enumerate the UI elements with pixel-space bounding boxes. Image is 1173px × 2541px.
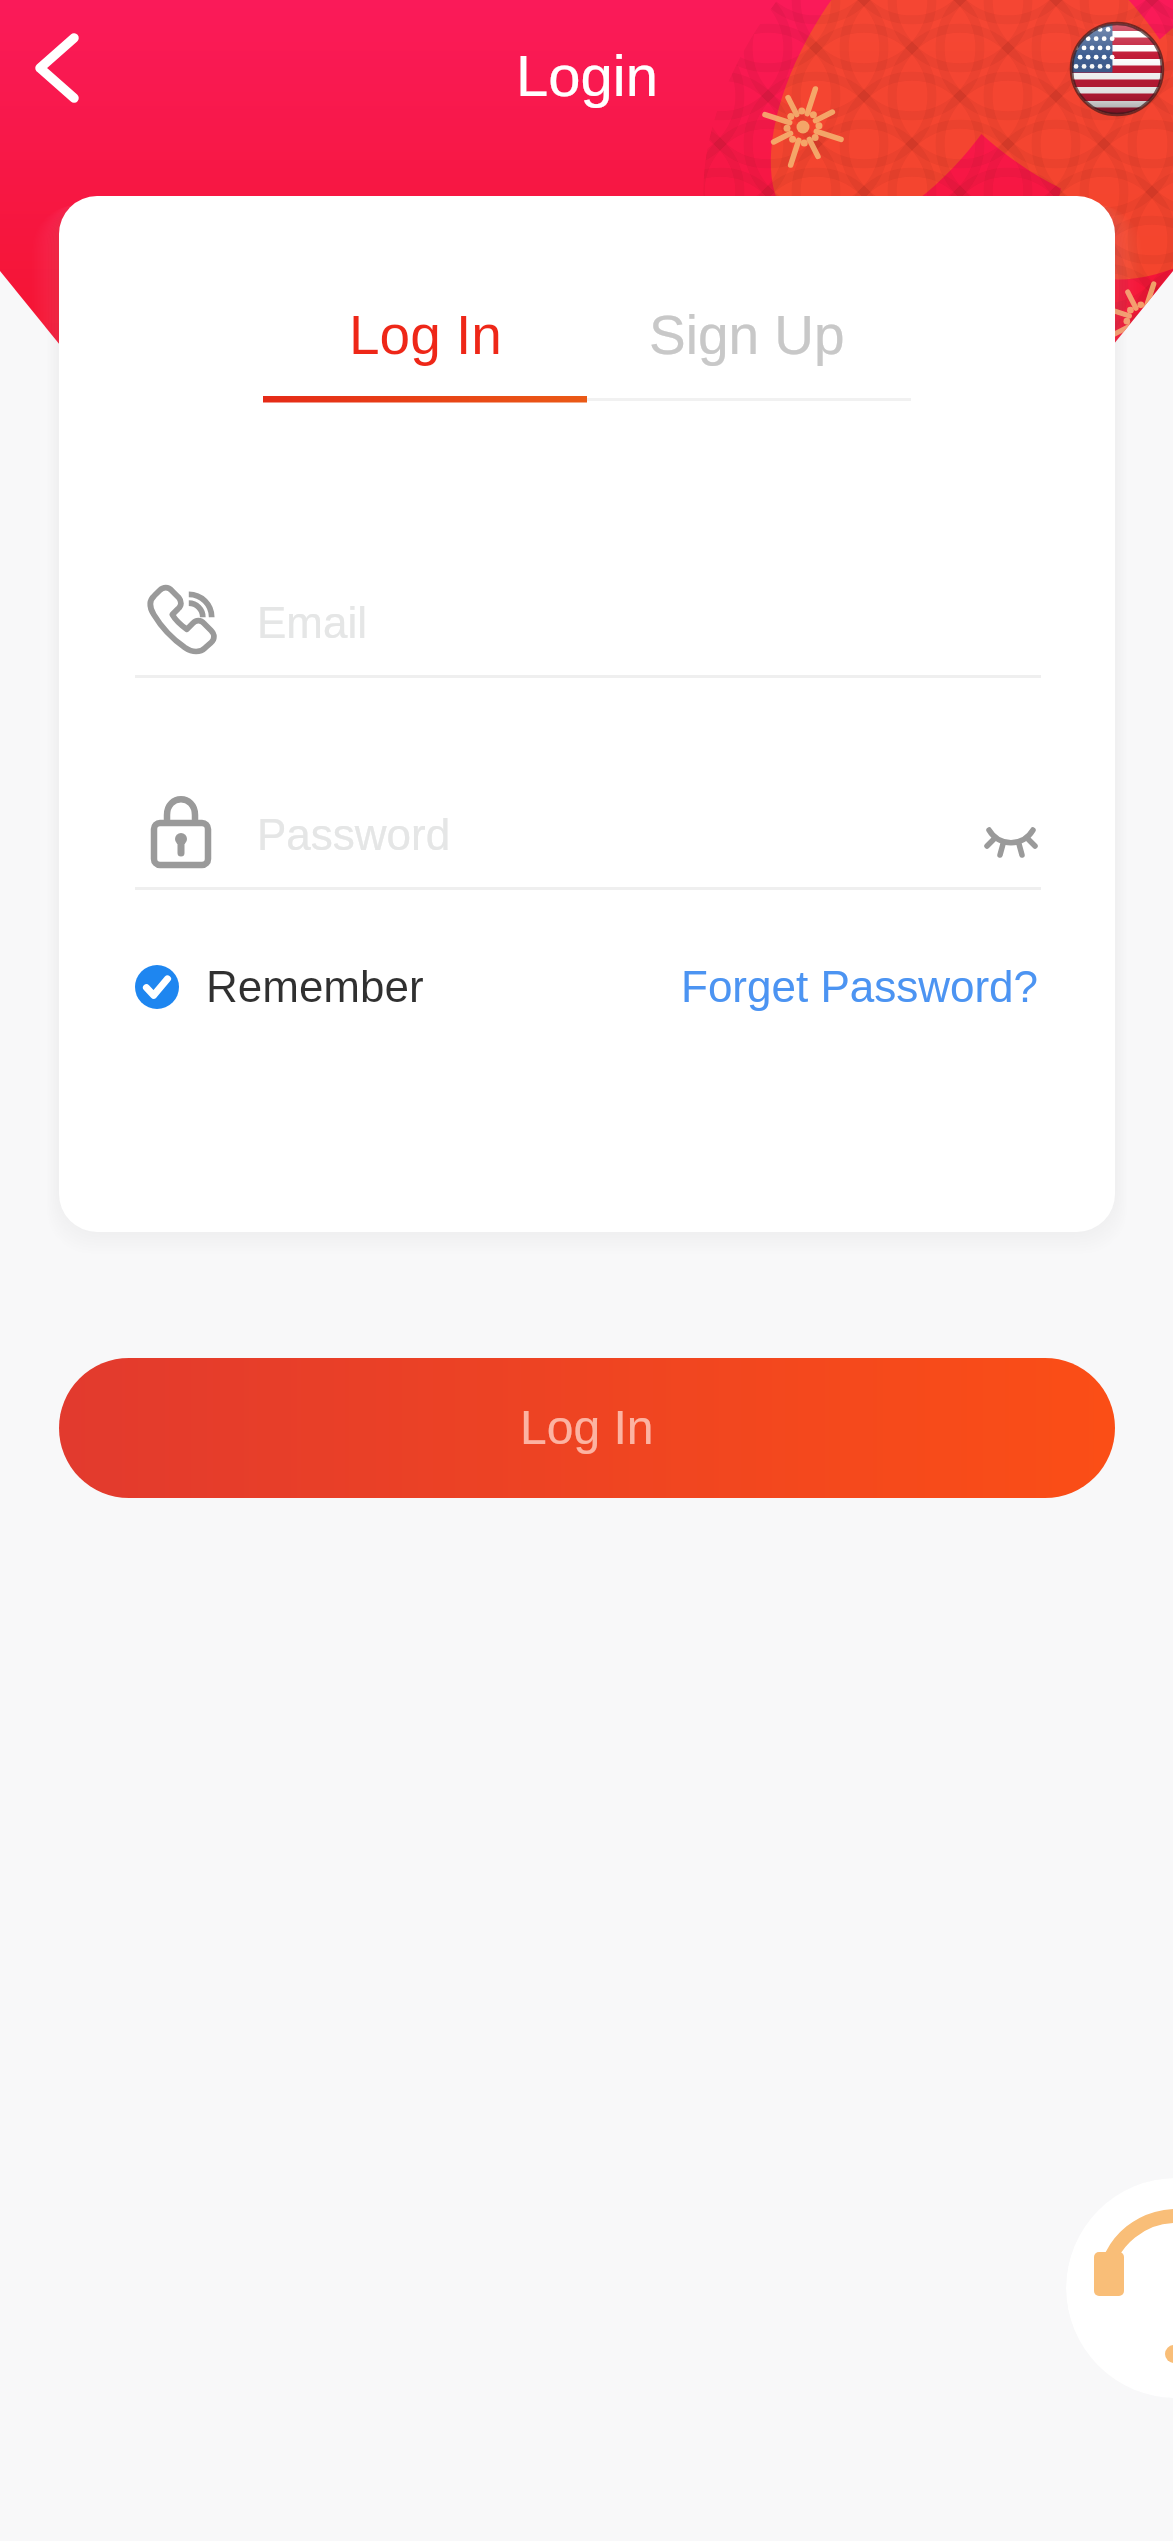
staticText: Forget Password? [681,962,1039,1011]
button[interactable]: Customer support [1066,2178,1173,2398]
button[interactable]: Log In [59,1358,1115,1498]
button[interactable]: Back [8,26,108,126]
staticText: Log In [520,1401,654,1455]
staticText: Remember [206,962,424,1011]
button[interactable]: Show password [956,783,1066,893]
button[interactable]: Log In [264,282,586,386]
button[interactable]: Forget Password? [667,950,1053,1023]
button[interactable]: Language [1069,21,1165,117]
button[interactable]: Email [135,566,1041,678]
staticText: Email [257,598,368,647]
button[interactable]: Password [135,778,1041,890]
staticText: Password [257,810,451,859]
staticText: Log In [349,304,502,365]
button[interactable]: Sign Up [586,282,908,386]
staticText: Login [516,43,658,108]
button[interactable]: Remember [121,950,438,1023]
staticText: Sign Up [649,304,845,365]
